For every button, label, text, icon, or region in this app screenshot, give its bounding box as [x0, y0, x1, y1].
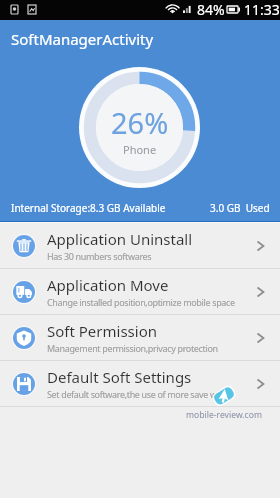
staticText: Change installed position,optimize mobil… — [47, 296, 235, 308]
button[interactable]: Soft Permission — [0, 315, 280, 360]
staticText: 11:33 — [244, 0, 280, 19]
staticText: 26% — [111, 103, 169, 142]
button[interactable]: Application Uninstall — [0, 223, 280, 268]
staticText: Set default software,the use of more sav… — [47, 388, 233, 400]
staticText: 84% — [197, 0, 225, 19]
staticText: Application Move — [47, 275, 169, 295]
staticText: SoftManagerActivity — [11, 29, 154, 49]
staticText: mobile-review.com — [186, 409, 262, 421]
button[interactable]: Default Soft Settings — [0, 361, 280, 406]
staticText: Management permission,privacy protection — [47, 342, 218, 354]
staticText: Internal Storage:8.3 GB Available — [11, 201, 166, 215]
staticText: Application Uninstall — [47, 229, 193, 249]
staticText: Default Soft Settings — [47, 367, 192, 387]
staticText: Phone — [123, 142, 157, 157]
staticText: Soft Permission — [47, 321, 157, 341]
button[interactable]: Application Move — [0, 269, 280, 314]
staticText: Has 30 numbers softwares — [47, 250, 152, 262]
staticText: 3.0 GB Used — [210, 201, 270, 215]
